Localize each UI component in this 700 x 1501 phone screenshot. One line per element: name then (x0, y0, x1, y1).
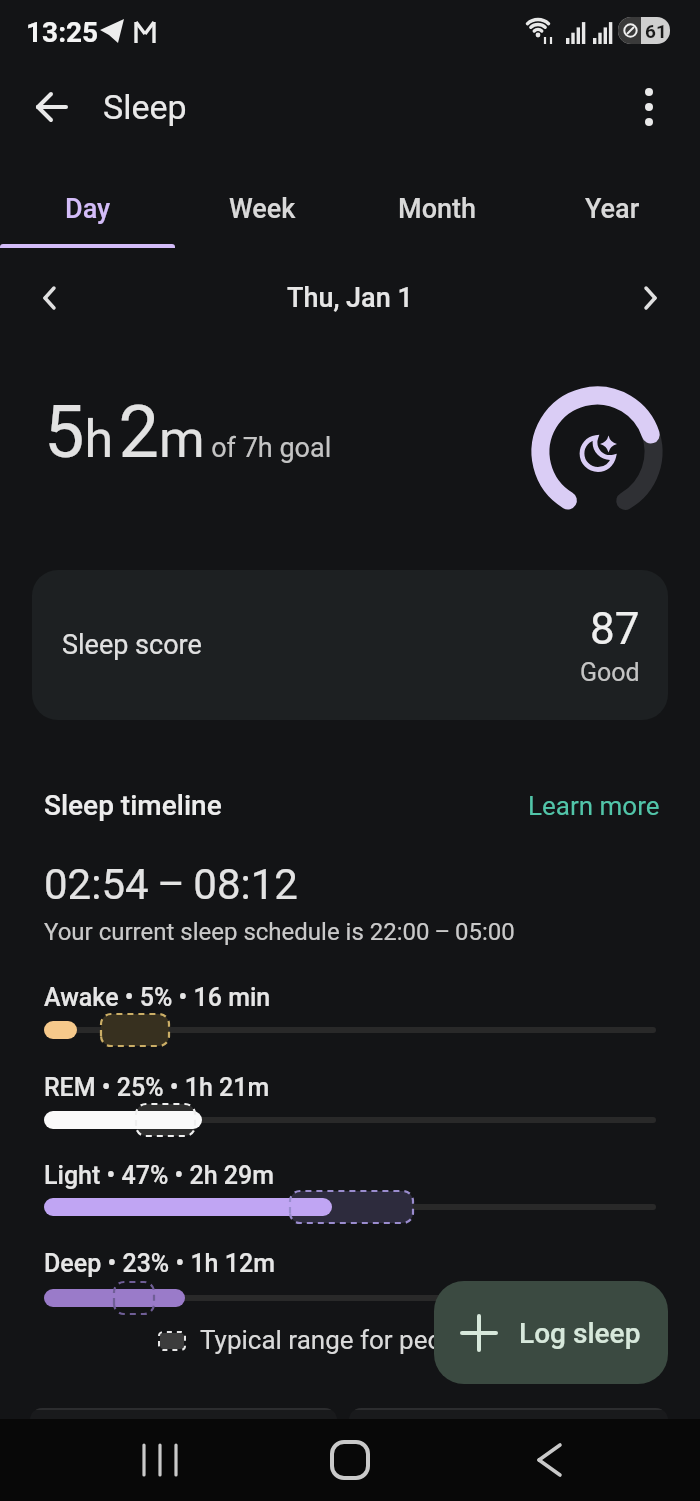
staticText: Month (398, 193, 477, 225)
staticText: Year (585, 193, 640, 225)
button[interactable] (24, 274, 76, 322)
staticText: Good (580, 658, 640, 687)
button[interactable] (0, 1096, 700, 1144)
staticText: Sleep timeline (44, 789, 222, 822)
button[interactable] (624, 274, 676, 322)
staticText: 87 (590, 603, 640, 655)
staticText: Your current sleep schedule is 22:00 – 0… (44, 918, 515, 946)
staticText: Learn more (528, 791, 660, 821)
button[interactable]: Sleep score (32, 570, 668, 720)
staticText: Awake • 5% • 16 min (44, 983, 271, 1012)
staticText: REM • 25% • 1h 21m (44, 1073, 270, 1102)
staticText: 02:54 – 08:12 (44, 860, 298, 909)
staticText: Log sleep (519, 1317, 641, 1350)
staticText: 5h 2m of 7h goal (44, 390, 332, 474)
button[interactable]: Month (350, 170, 525, 248)
staticText: Sleep (103, 87, 187, 127)
button[interactable] (622, 80, 676, 134)
button[interactable]: Year (525, 170, 700, 248)
staticText: Typical range for peop (200, 1325, 457, 1355)
staticText: Week (229, 193, 296, 225)
staticText: Day (65, 193, 111, 225)
button[interactable]: Learn more (440, 782, 660, 830)
staticText: Sleep score (62, 629, 202, 661)
button[interactable] (127, 1429, 193, 1491)
button[interactable]: Thu, Jan 1 (250, 274, 450, 322)
button[interactable]: Week (175, 170, 350, 248)
staticText: Light • 47% • 2h 29m (44, 1161, 274, 1190)
staticText: 61 (645, 20, 667, 42)
staticText: Thu, Jan 1 (287, 282, 413, 314)
button[interactable] (317, 1429, 383, 1491)
button[interactable] (20, 75, 84, 139)
button[interactable]: Log sleep (434, 1281, 668, 1384)
staticText: 13:25 (26, 16, 99, 49)
button[interactable] (515, 1429, 581, 1491)
button[interactable] (0, 1006, 700, 1054)
button[interactable]: Day (0, 170, 175, 248)
button[interactable] (0, 1274, 700, 1322)
button[interactable] (0, 1183, 700, 1231)
staticText: Deep • 23% • 1h 12m (44, 1249, 275, 1278)
